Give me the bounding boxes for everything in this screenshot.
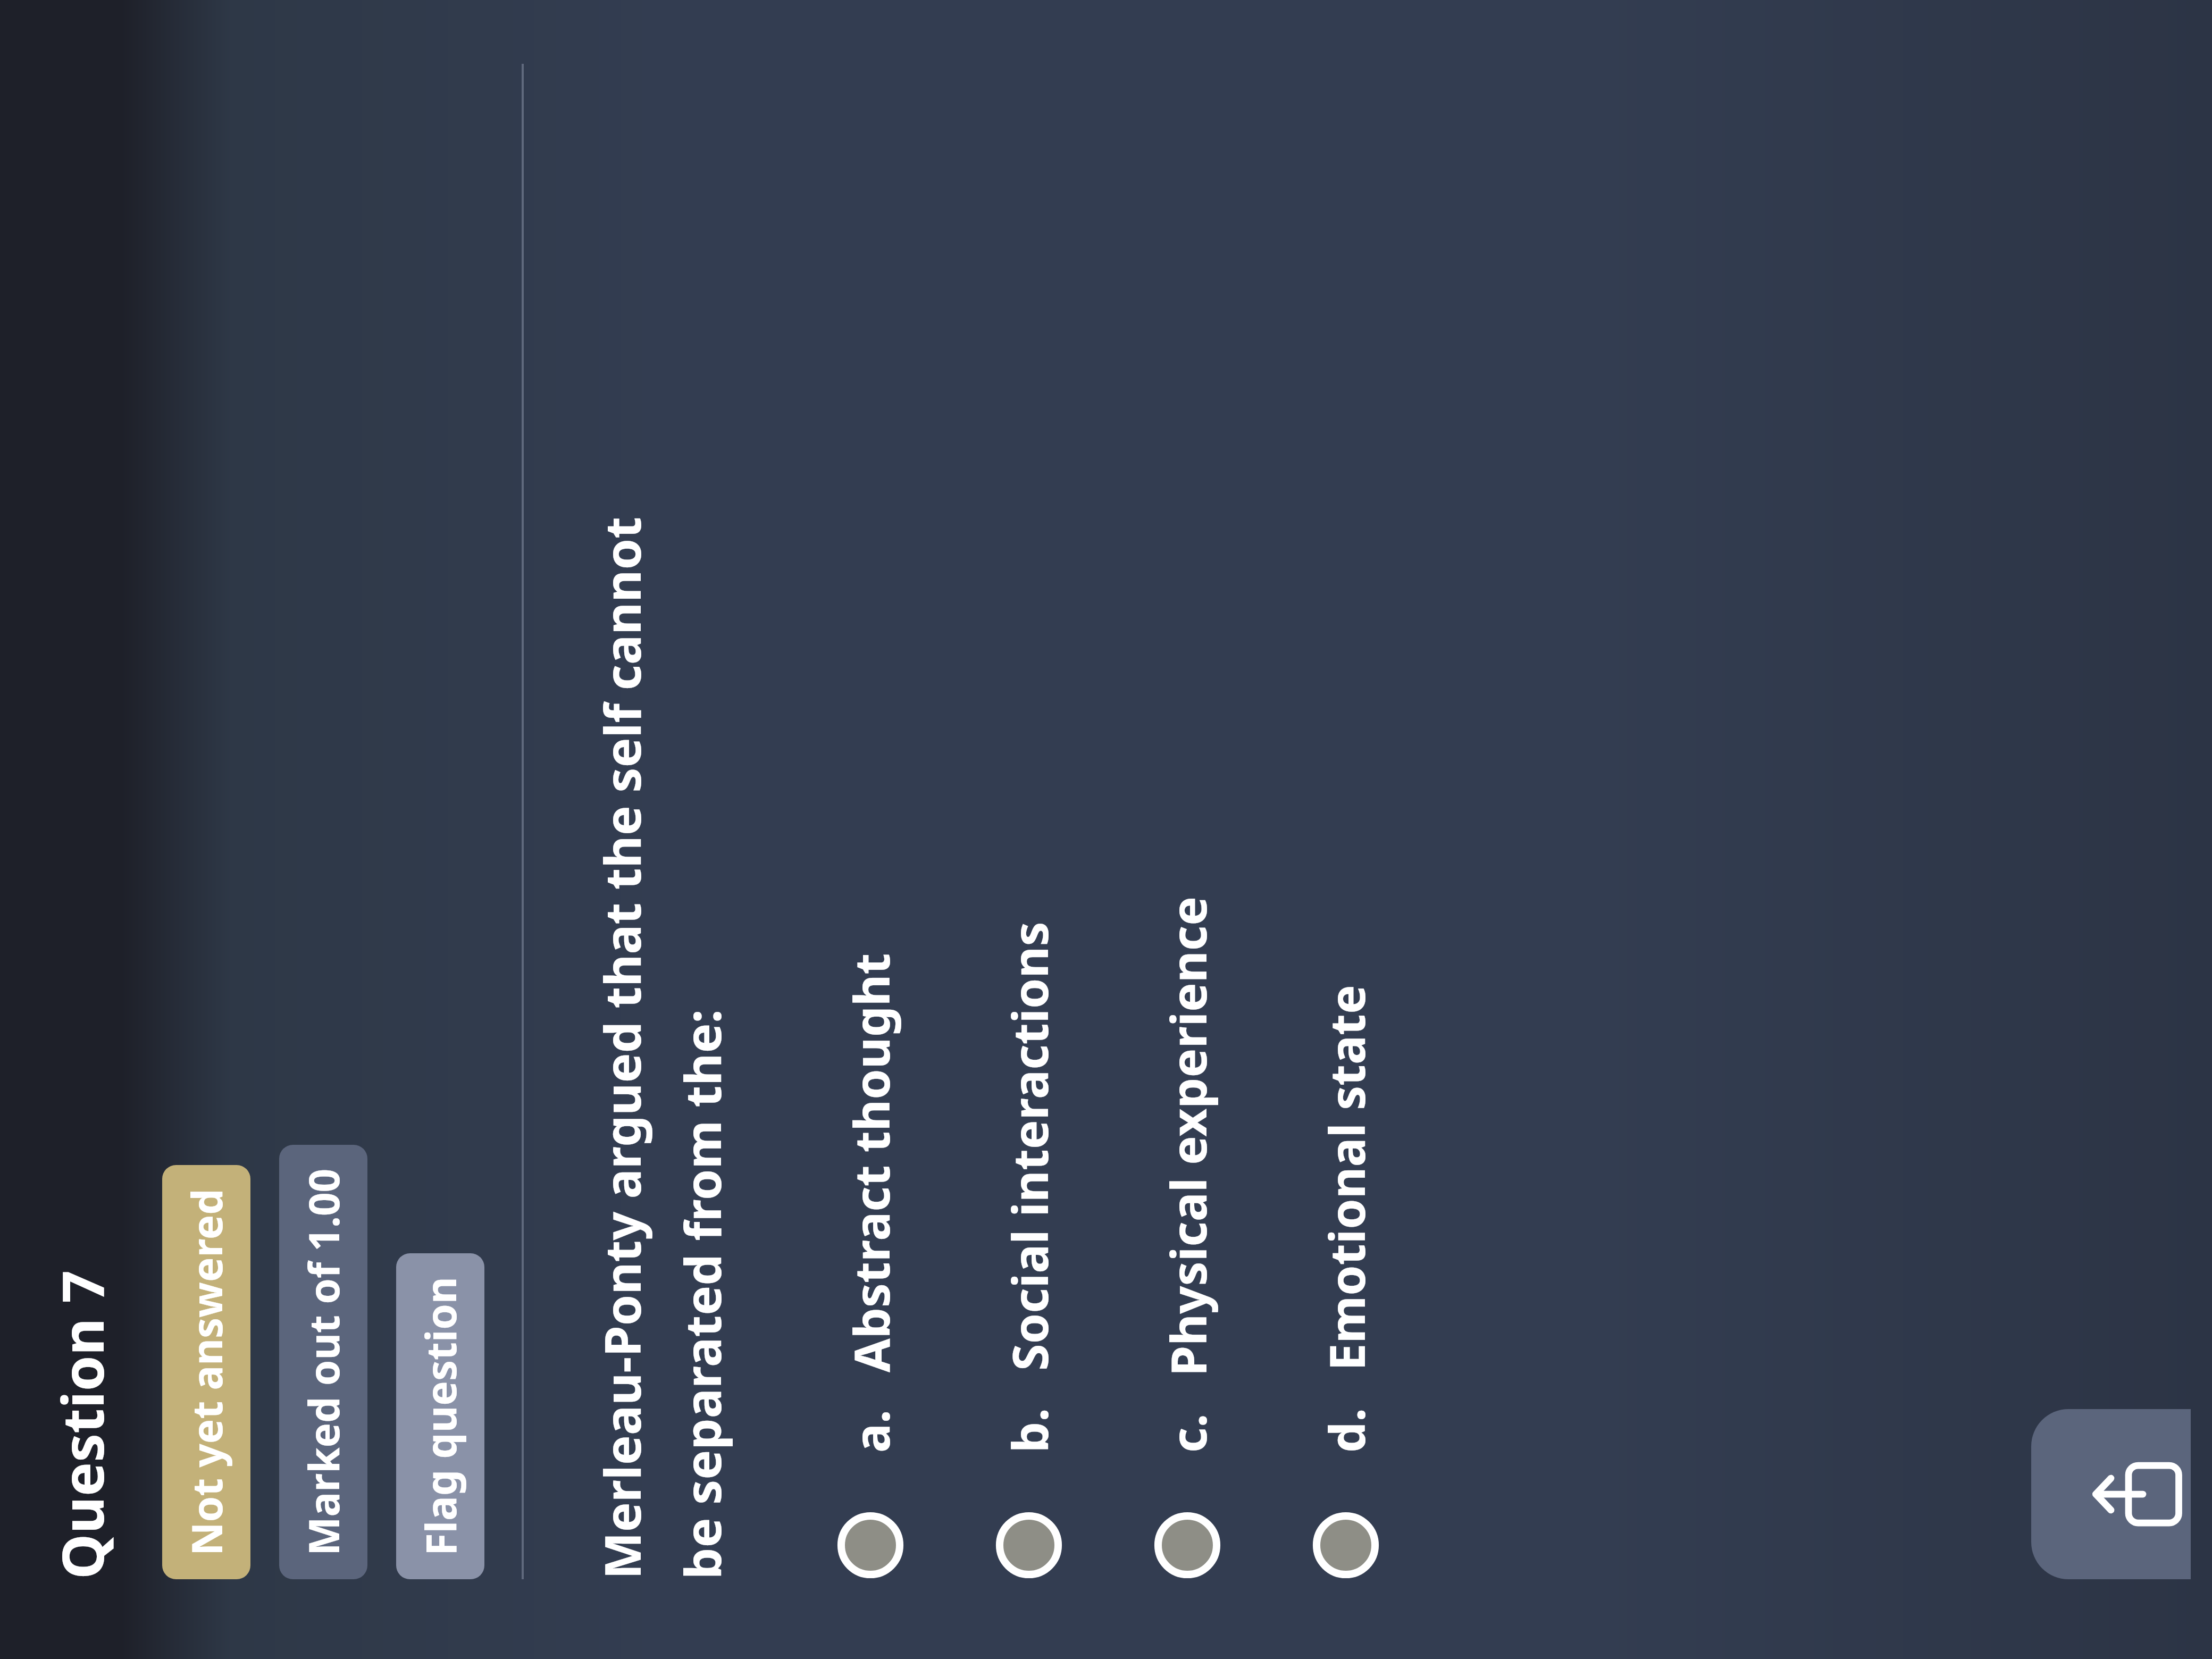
staticText: b. — [996, 1408, 1062, 1453]
button[interactable]: Marked out of 1.00 — [279, 1145, 367, 1579]
staticText: Merleau-Ponty argued that the self canno… — [588, 517, 735, 1579]
staticText: Physical experience — [1154, 896, 1221, 1376]
button[interactable]: c. — [1153, 0, 1221, 1659]
staticText: Not yet answered — [178, 1188, 234, 1556]
staticText: Social interactions — [996, 921, 1062, 1371]
staticText: Emotional state — [1313, 985, 1379, 1371]
staticText: Abstract thought — [837, 953, 904, 1372]
button[interactable]: Share — [2031, 1409, 2191, 1579]
button[interactable]: b. — [995, 0, 1063, 1659]
staticText: Marked out of 1.00 — [295, 1168, 351, 1556]
staticText: a. — [837, 1410, 904, 1453]
staticText: d. — [1313, 1408, 1379, 1453]
staticText: Question 7 — [43, 1270, 121, 1579]
button[interactable]: Not yet answered — [162, 1165, 250, 1579]
button[interactable]: d. — [1312, 0, 1380, 1659]
staticText: Flag question — [412, 1277, 468, 1556]
button[interactable]: a. — [836, 0, 904, 1659]
staticText: c. — [1154, 1413, 1221, 1453]
button[interactable]: Flag question — [396, 1253, 484, 1579]
